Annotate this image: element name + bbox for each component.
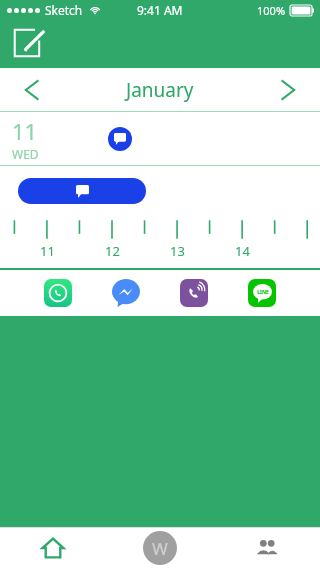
button[interactable]: LINE xyxy=(248,279,276,307)
button[interactable]: Compose xyxy=(12,27,46,61)
staticText: January xyxy=(126,77,194,103)
button[interactable]: Event xyxy=(18,178,146,204)
button[interactable]: WhatsApp xyxy=(44,279,72,307)
button[interactable]: Next month xyxy=(272,75,302,105)
staticText: 100% xyxy=(257,3,286,18)
staticText: 9:41 AM xyxy=(137,2,183,18)
staticText: 12 xyxy=(105,242,120,260)
staticText: WED xyxy=(12,146,39,162)
button[interactable]: Wear xyxy=(106,528,213,568)
button[interactable]: Contacts xyxy=(213,528,320,568)
button[interactable]: Messenger xyxy=(112,279,140,307)
staticText: 11 xyxy=(40,242,55,260)
staticText: 11 xyxy=(12,116,38,146)
button[interactable]: Message xyxy=(108,127,132,151)
staticText: Sketch xyxy=(45,2,83,18)
staticText: LINE xyxy=(257,289,269,296)
button[interactable]: Home xyxy=(0,528,106,568)
button[interactable]: Previous month xyxy=(18,75,48,105)
staticText: W xyxy=(152,537,168,560)
staticText: 13 xyxy=(170,242,185,260)
staticText: 14 xyxy=(235,242,250,260)
button[interactable]: Viber xyxy=(180,279,208,307)
